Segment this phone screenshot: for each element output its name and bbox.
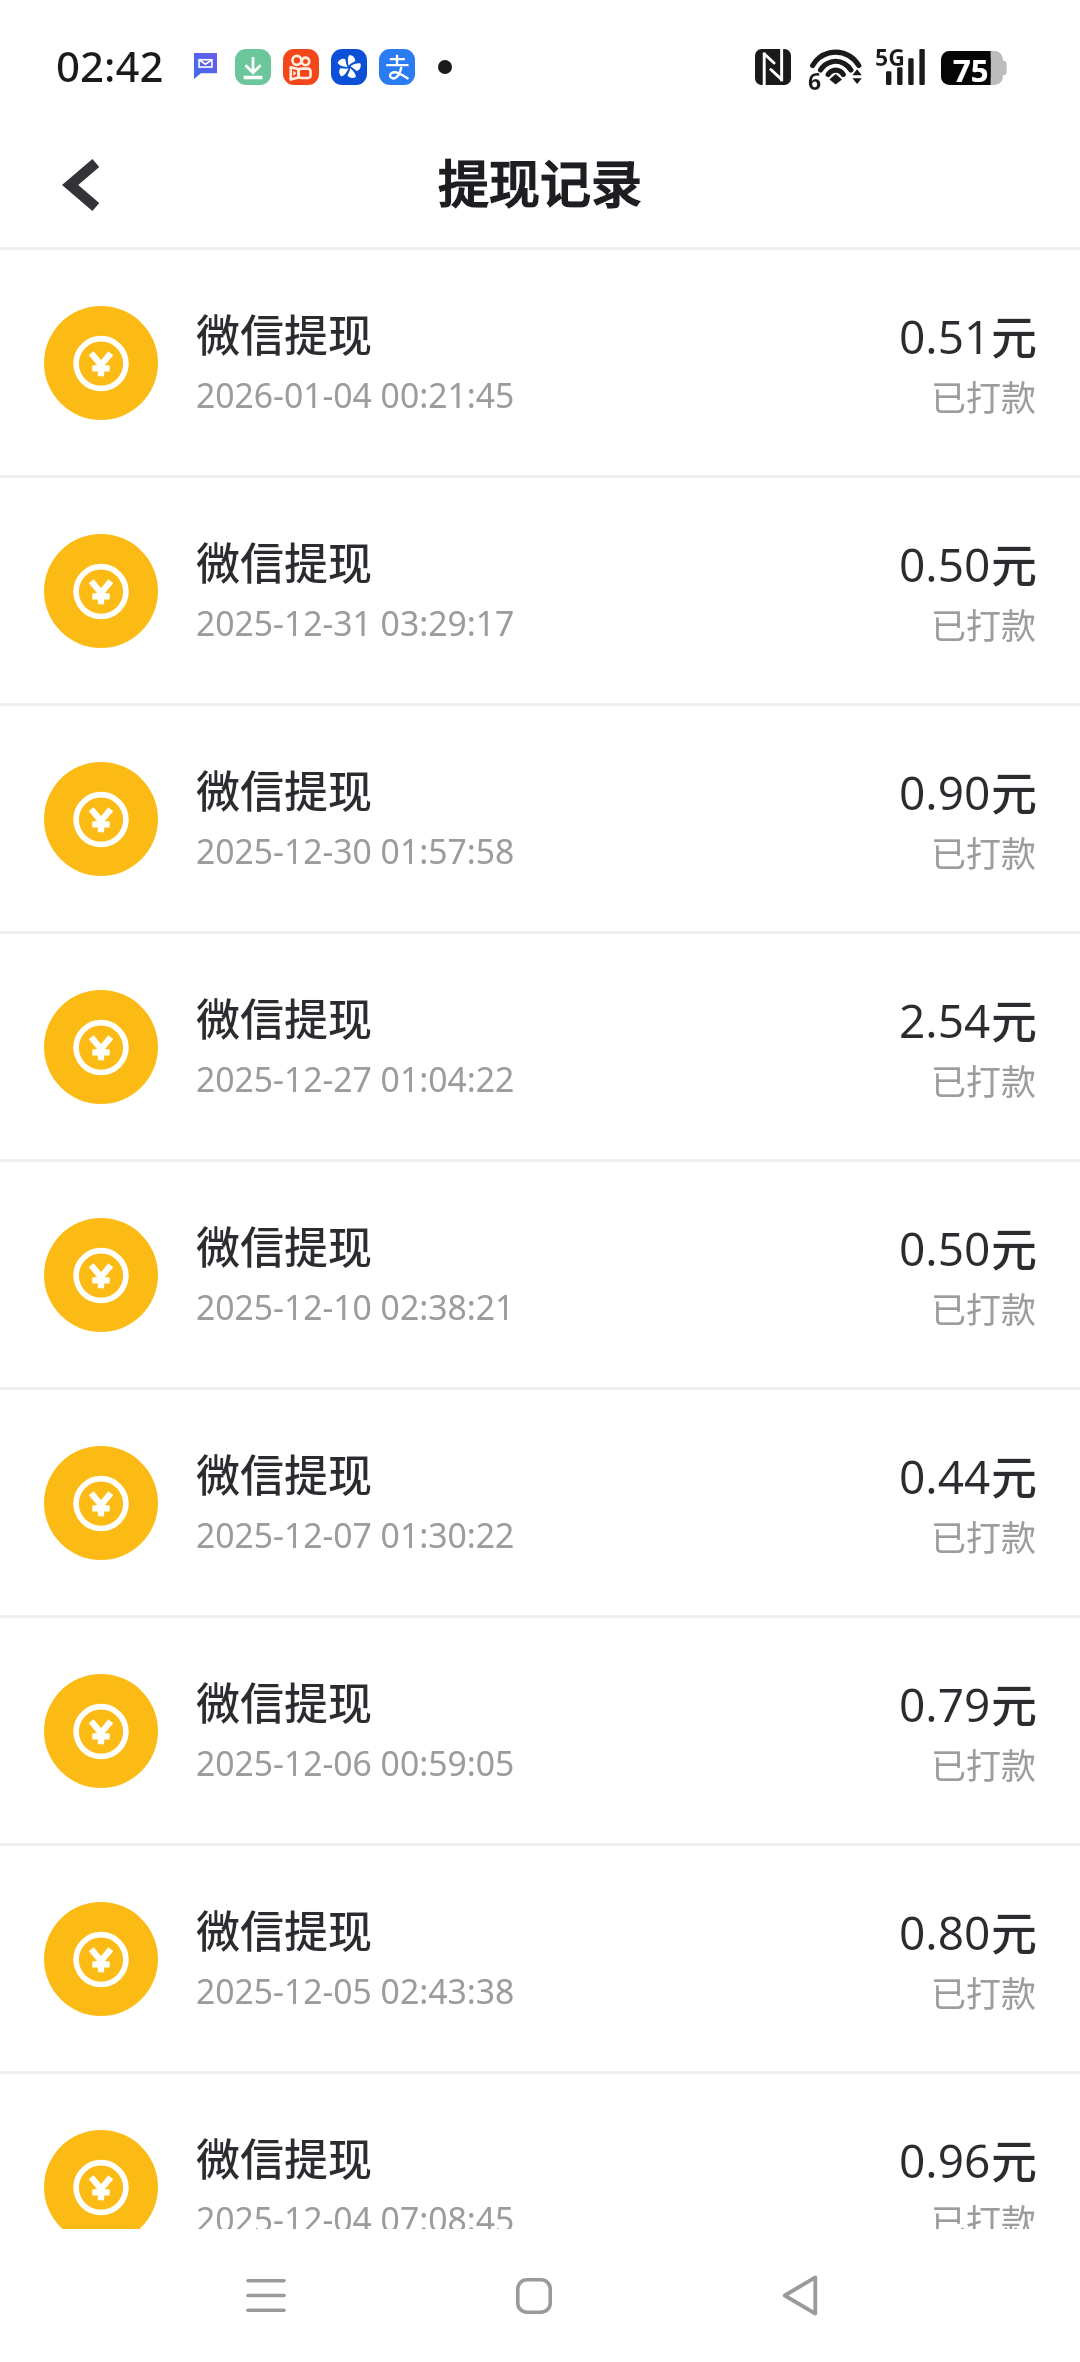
staticText: 0.44	[899, 1445, 991, 1508]
staticText: 元	[991, 301, 1037, 368]
staticText: 微信提现	[196, 1669, 372, 1733]
staticText: 已打款	[931, 1966, 1037, 2017]
staticText: 微信提现	[196, 1441, 372, 1505]
staticText: 0.79	[899, 1673, 991, 1736]
staticText: 微信提现	[196, 301, 372, 365]
staticText: 已打款	[931, 1510, 1037, 1561]
staticText: 微信提现	[196, 529, 372, 593]
staticText: 微信提现	[196, 1213, 372, 1277]
staticText: 2025-12-30 01:57:58	[196, 828, 515, 874]
button[interactable]: 微信提现	[0, 1390, 1080, 1615]
button[interactable]: 微信提现	[0, 478, 1080, 703]
staticText: 已打款	[931, 598, 1037, 649]
button[interactable]: 微信提现	[0, 1162, 1080, 1387]
staticText: 0.51	[899, 305, 991, 368]
staticText: 2025-12-04 07:08:45	[196, 2196, 515, 2229]
staticText: 2025-12-06 00:59:05	[196, 1740, 515, 1786]
staticText: 元	[991, 757, 1037, 824]
staticText: 提现记录	[438, 144, 643, 218]
staticText: 元	[991, 985, 1037, 1052]
button[interactable]: Back	[740, 2229, 860, 2362]
staticText: 2025-12-05 02:43:38	[196, 1968, 515, 2014]
staticText: 微信提现	[196, 757, 372, 821]
staticText: 2025-12-31 03:29:17	[196, 600, 515, 646]
staticText: 已打款	[931, 2194, 1037, 2229]
staticText: 0.50	[899, 533, 991, 596]
staticText: 2025-12-07 01:30:22	[196, 1512, 515, 1558]
staticText: 元	[991, 529, 1037, 596]
button[interactable]: 微信提现	[0, 250, 1080, 475]
staticText: 已打款	[931, 1738, 1037, 1789]
staticText: 已打款	[931, 370, 1037, 421]
staticText: 6	[808, 65, 822, 96]
staticText: 0.96	[899, 2129, 991, 2192]
button[interactable]: 微信提现	[0, 706, 1080, 931]
staticText: 75	[953, 49, 989, 91]
button[interactable]: Back	[28, 146, 136, 224]
staticText: 0.50	[899, 1217, 991, 1280]
button[interactable]: Home	[474, 2229, 594, 2362]
staticText: 已打款	[931, 826, 1037, 877]
staticText: 元	[991, 1441, 1037, 1508]
staticText: 2025-12-10 02:38:21	[196, 1284, 515, 1330]
staticText: 元	[991, 1213, 1037, 1280]
staticText: 2025-12-27 01:04:22	[196, 1056, 515, 1102]
staticText: 微信提现	[196, 985, 372, 1049]
staticText: 元	[991, 1897, 1037, 1964]
staticText: 02:42	[56, 37, 164, 94]
staticText: 微信提现	[196, 2125, 372, 2189]
staticText: 0.90	[899, 761, 991, 824]
staticText: 已打款	[931, 1282, 1037, 1333]
staticText: 5G	[875, 41, 905, 72]
staticText: 2.54	[899, 989, 991, 1052]
button[interactable]: 微信提现	[0, 2074, 1080, 2229]
staticText: 微信提现	[196, 1897, 372, 1961]
staticText: 2026-01-04 00:21:45	[196, 372, 515, 418]
staticText: 元	[991, 1669, 1037, 1736]
staticText: 已打款	[931, 1054, 1037, 1105]
button[interactable]: 微信提现	[0, 934, 1080, 1159]
button[interactable]: 微信提现	[0, 1618, 1080, 1843]
staticText: 0.80	[899, 1901, 991, 1964]
button[interactable]: 微信提现	[0, 1846, 1080, 2071]
staticText: 元	[991, 2125, 1037, 2192]
button[interactable]: Recent apps	[206, 2229, 326, 2362]
